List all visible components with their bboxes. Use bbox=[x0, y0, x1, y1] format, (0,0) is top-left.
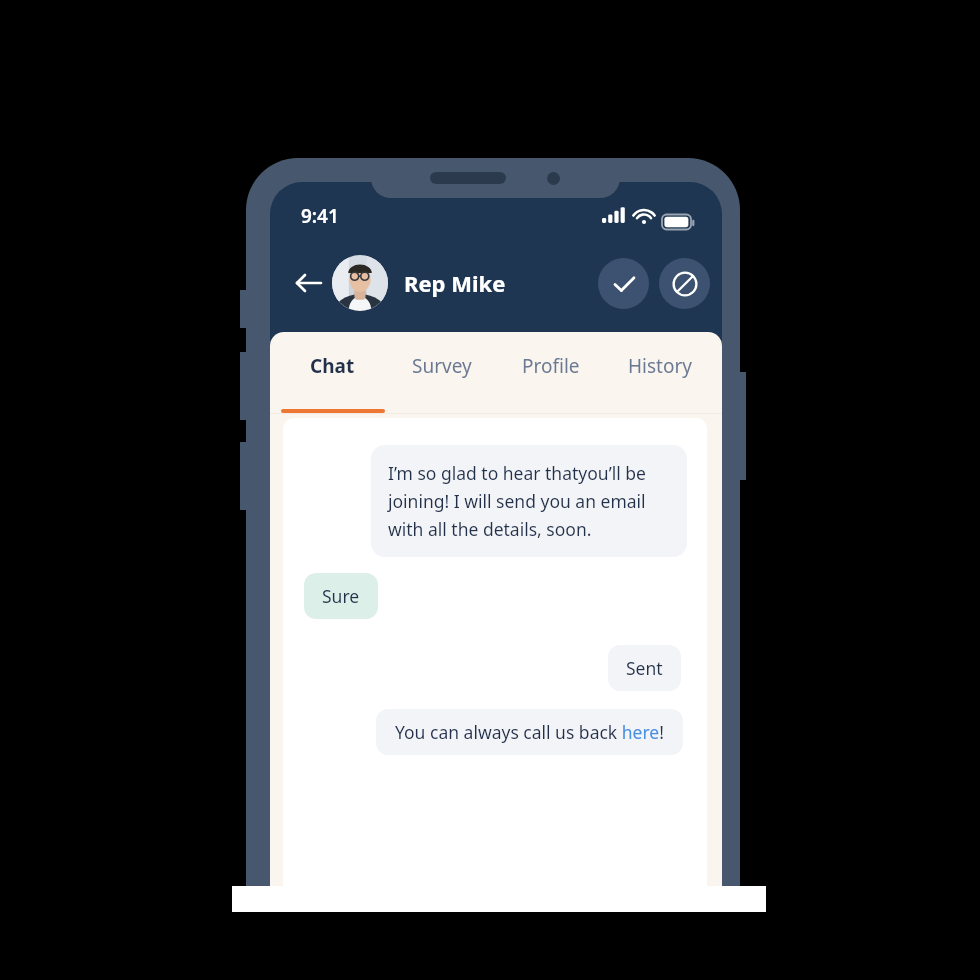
button[interactable]: You can always call us back here! bbox=[376, 709, 683, 755]
staticText: I’m so glad to hear thatyou’ll be joinin… bbox=[388, 461, 670, 541]
staticText: Rep Mike bbox=[404, 268, 506, 298]
staticText: Survey bbox=[412, 353, 472, 379]
button[interactable]: I’m so glad to hear thatyou’ll be joinin… bbox=[371, 445, 687, 557]
staticText: Profile bbox=[522, 353, 580, 379]
staticText: History bbox=[628, 353, 692, 379]
staticText: Sent bbox=[626, 656, 663, 680]
staticText: Sure bbox=[322, 584, 360, 608]
button[interactable]: Back bbox=[282, 257, 334, 309]
button[interactable]: Sent bbox=[608, 645, 681, 691]
button[interactable]: Survey bbox=[387, 332, 496, 418]
staticText: 9:41 bbox=[301, 203, 339, 229]
button[interactable]: Rep Mike avatar bbox=[332, 255, 388, 311]
button[interactable]: History bbox=[605, 332, 714, 418]
button[interactable]: Block bbox=[659, 258, 710, 309]
staticText: You can always call us back here! bbox=[395, 720, 664, 744]
button[interactable]: Accept bbox=[598, 258, 649, 309]
staticText: Chat bbox=[310, 353, 355, 379]
button[interactable]: Sure bbox=[304, 573, 378, 619]
button[interactable]: Profile bbox=[496, 332, 605, 418]
button[interactable]: Chat bbox=[278, 332, 387, 418]
